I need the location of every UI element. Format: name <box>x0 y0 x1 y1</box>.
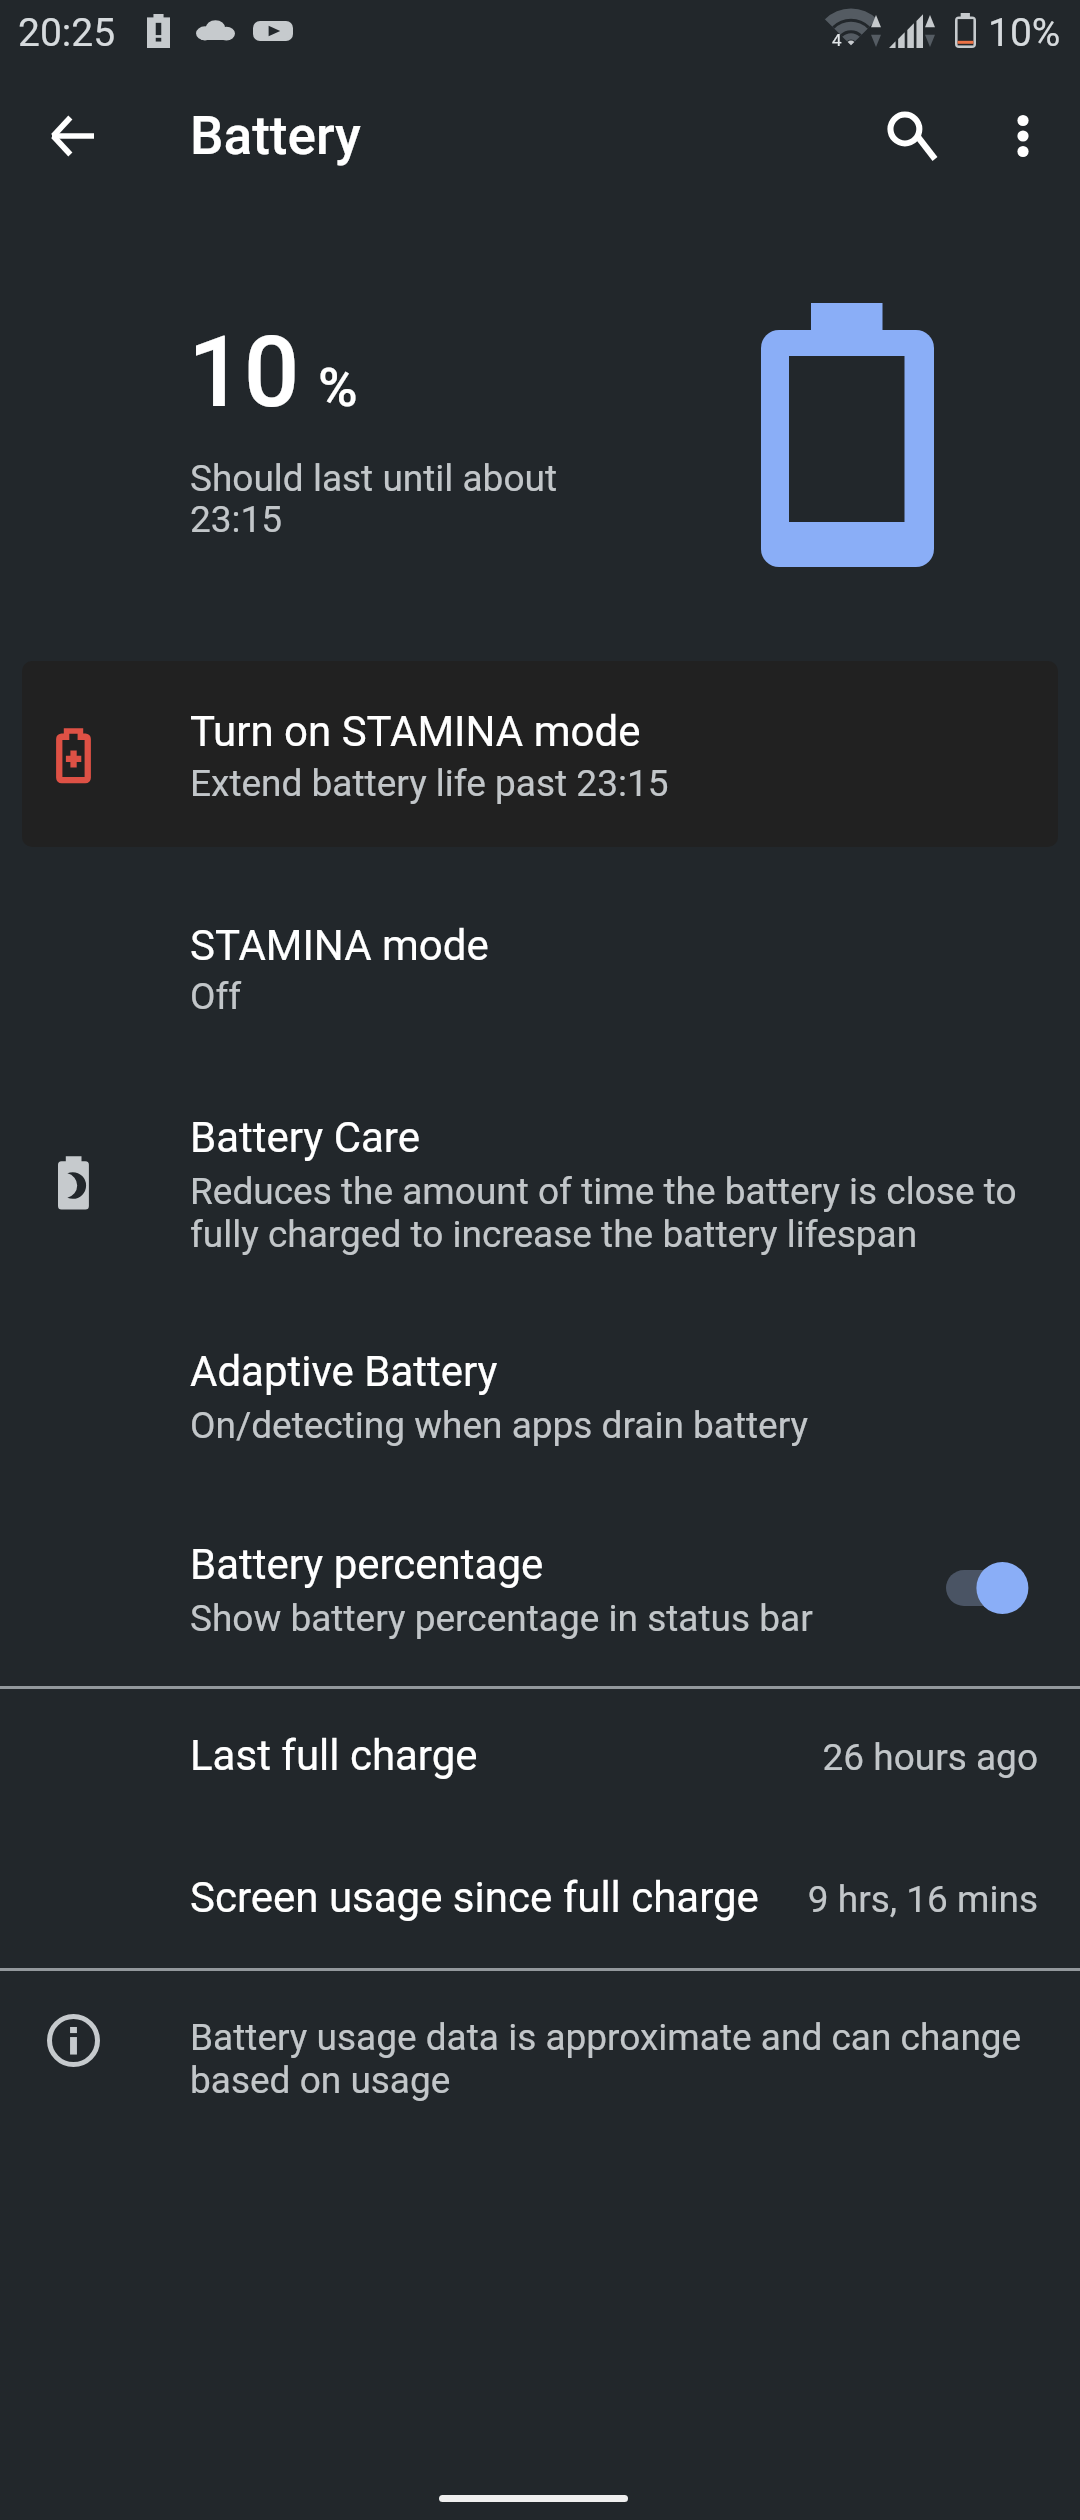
button[interactable]: Turn on STAMINA mode <box>22 661 1058 847</box>
button[interactable]: Back <box>25 88 121 184</box>
button[interactable]: More options <box>975 88 1071 184</box>
staticText: Should last until about <box>190 457 558 500</box>
staticText: Screen usage since full charge <box>190 1873 759 1922</box>
button[interactable]: Adaptive Battery <box>0 1308 1080 1496</box>
staticText: 10% <box>988 10 1061 56</box>
staticText: 9 hrs, 16 mins <box>807 1878 1038 1921</box>
staticText: 4 <box>832 30 842 50</box>
staticText: Battery <box>190 105 361 167</box>
staticText: 20:25 <box>18 10 116 56</box>
staticText: Reduces the amount of time the battery i… <box>190 1170 1070 1256</box>
staticText: 10 <box>188 315 300 430</box>
staticText: 23:15 <box>190 498 283 541</box>
staticText: Battery Care <box>190 1113 420 1162</box>
button[interactable]: Screen usage since full charge <box>0 1829 1080 1968</box>
staticText: Battery percentage <box>190 1540 544 1589</box>
button[interactable]: Battery percentage <box>0 1500 1080 1686</box>
button[interactable]: Battery percentage toggle <box>946 1562 1026 1614</box>
staticText: Extend battery life past 23:15 <box>190 762 669 805</box>
staticText: Adaptive Battery <box>190 1347 498 1396</box>
staticText: % <box>318 356 358 419</box>
button[interactable]: STAMINA mode <box>0 874 1080 1044</box>
staticText: Last full charge <box>190 1731 478 1780</box>
button[interactable]: Last full charge <box>0 1689 1080 1829</box>
staticText: On/detecting when apps drain battery <box>190 1404 809 1447</box>
staticText: Off <box>190 975 242 1018</box>
button[interactable]: Search <box>857 81 953 177</box>
staticText: Battery usage data is approximate and ca… <box>190 2016 1070 2102</box>
staticText: 26 hours ago <box>822 1736 1038 1779</box>
staticText: Turn on STAMINA mode <box>190 707 641 756</box>
staticText: STAMINA mode <box>190 921 489 970</box>
staticText: Show battery percentage in status bar <box>190 1597 813 1640</box>
button[interactable]: Battery Care <box>0 1066 1080 1300</box>
